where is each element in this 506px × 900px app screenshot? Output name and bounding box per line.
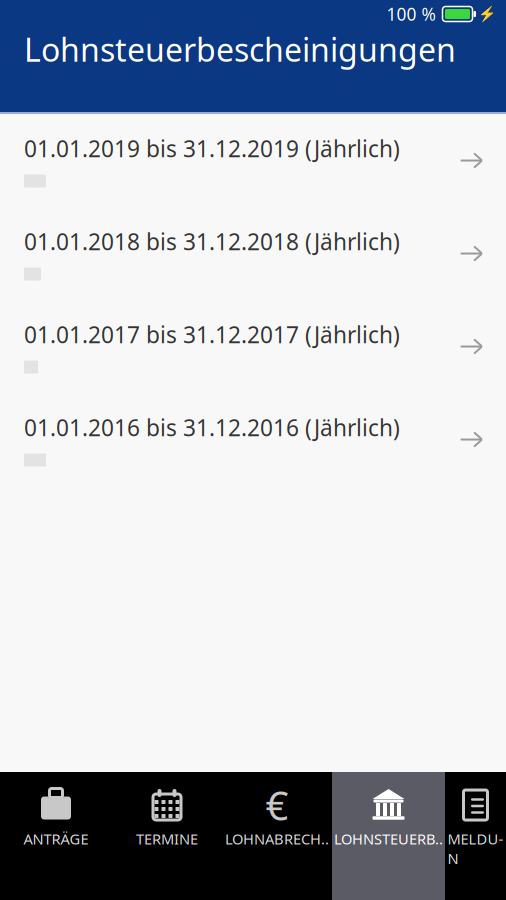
button[interactable]: MELDUN: [445, 772, 506, 900]
button[interactable]: 01.01.2019 bis 31.12.2019 (Jährlich): [0, 114, 506, 207]
button[interactable]: 01.01.2018 bis 31.12.2018 (Jährlich): [0, 207, 506, 300]
staticText: 01.01.2016 bis 31.12.2016 (Jährlich): [24, 412, 400, 442]
button[interactable]: ANTRÄGE: [0, 772, 112, 900]
button[interactable]: €: [222, 772, 332, 900]
staticText: €: [265, 778, 288, 831]
staticText: 01.01.2017 bis 31.12.2017 (Jährlich): [24, 319, 400, 349]
button[interactable]: LOHNSTEUERB..: [332, 772, 445, 900]
staticText: 01.01.2019 bis 31.12.2019 (Jährlich): [24, 133, 400, 163]
staticText: ⚡: [478, 6, 496, 22]
staticText: MELDUN: [447, 829, 503, 868]
staticText: TERMINE: [136, 829, 198, 848]
staticText: 01.01.2018 bis 31.12.2018 (Jährlich): [24, 226, 400, 256]
button[interactable]: 01.01.2016 bis 31.12.2016 (Jährlich): [0, 393, 506, 486]
staticText: LOHNSTEUERB..: [334, 829, 443, 848]
staticText: Lohnsteuerbescheinigungen: [24, 28, 456, 70]
staticText: 100 %: [386, 2, 435, 25]
button[interactable]: TERMINE: [112, 772, 222, 900]
staticText: LOHNABRECH..: [225, 829, 329, 848]
button[interactable]: 01.01.2017 bis 31.12.2017 (Jährlich): [0, 300, 506, 393]
staticText: ANTRÄGE: [23, 829, 88, 848]
